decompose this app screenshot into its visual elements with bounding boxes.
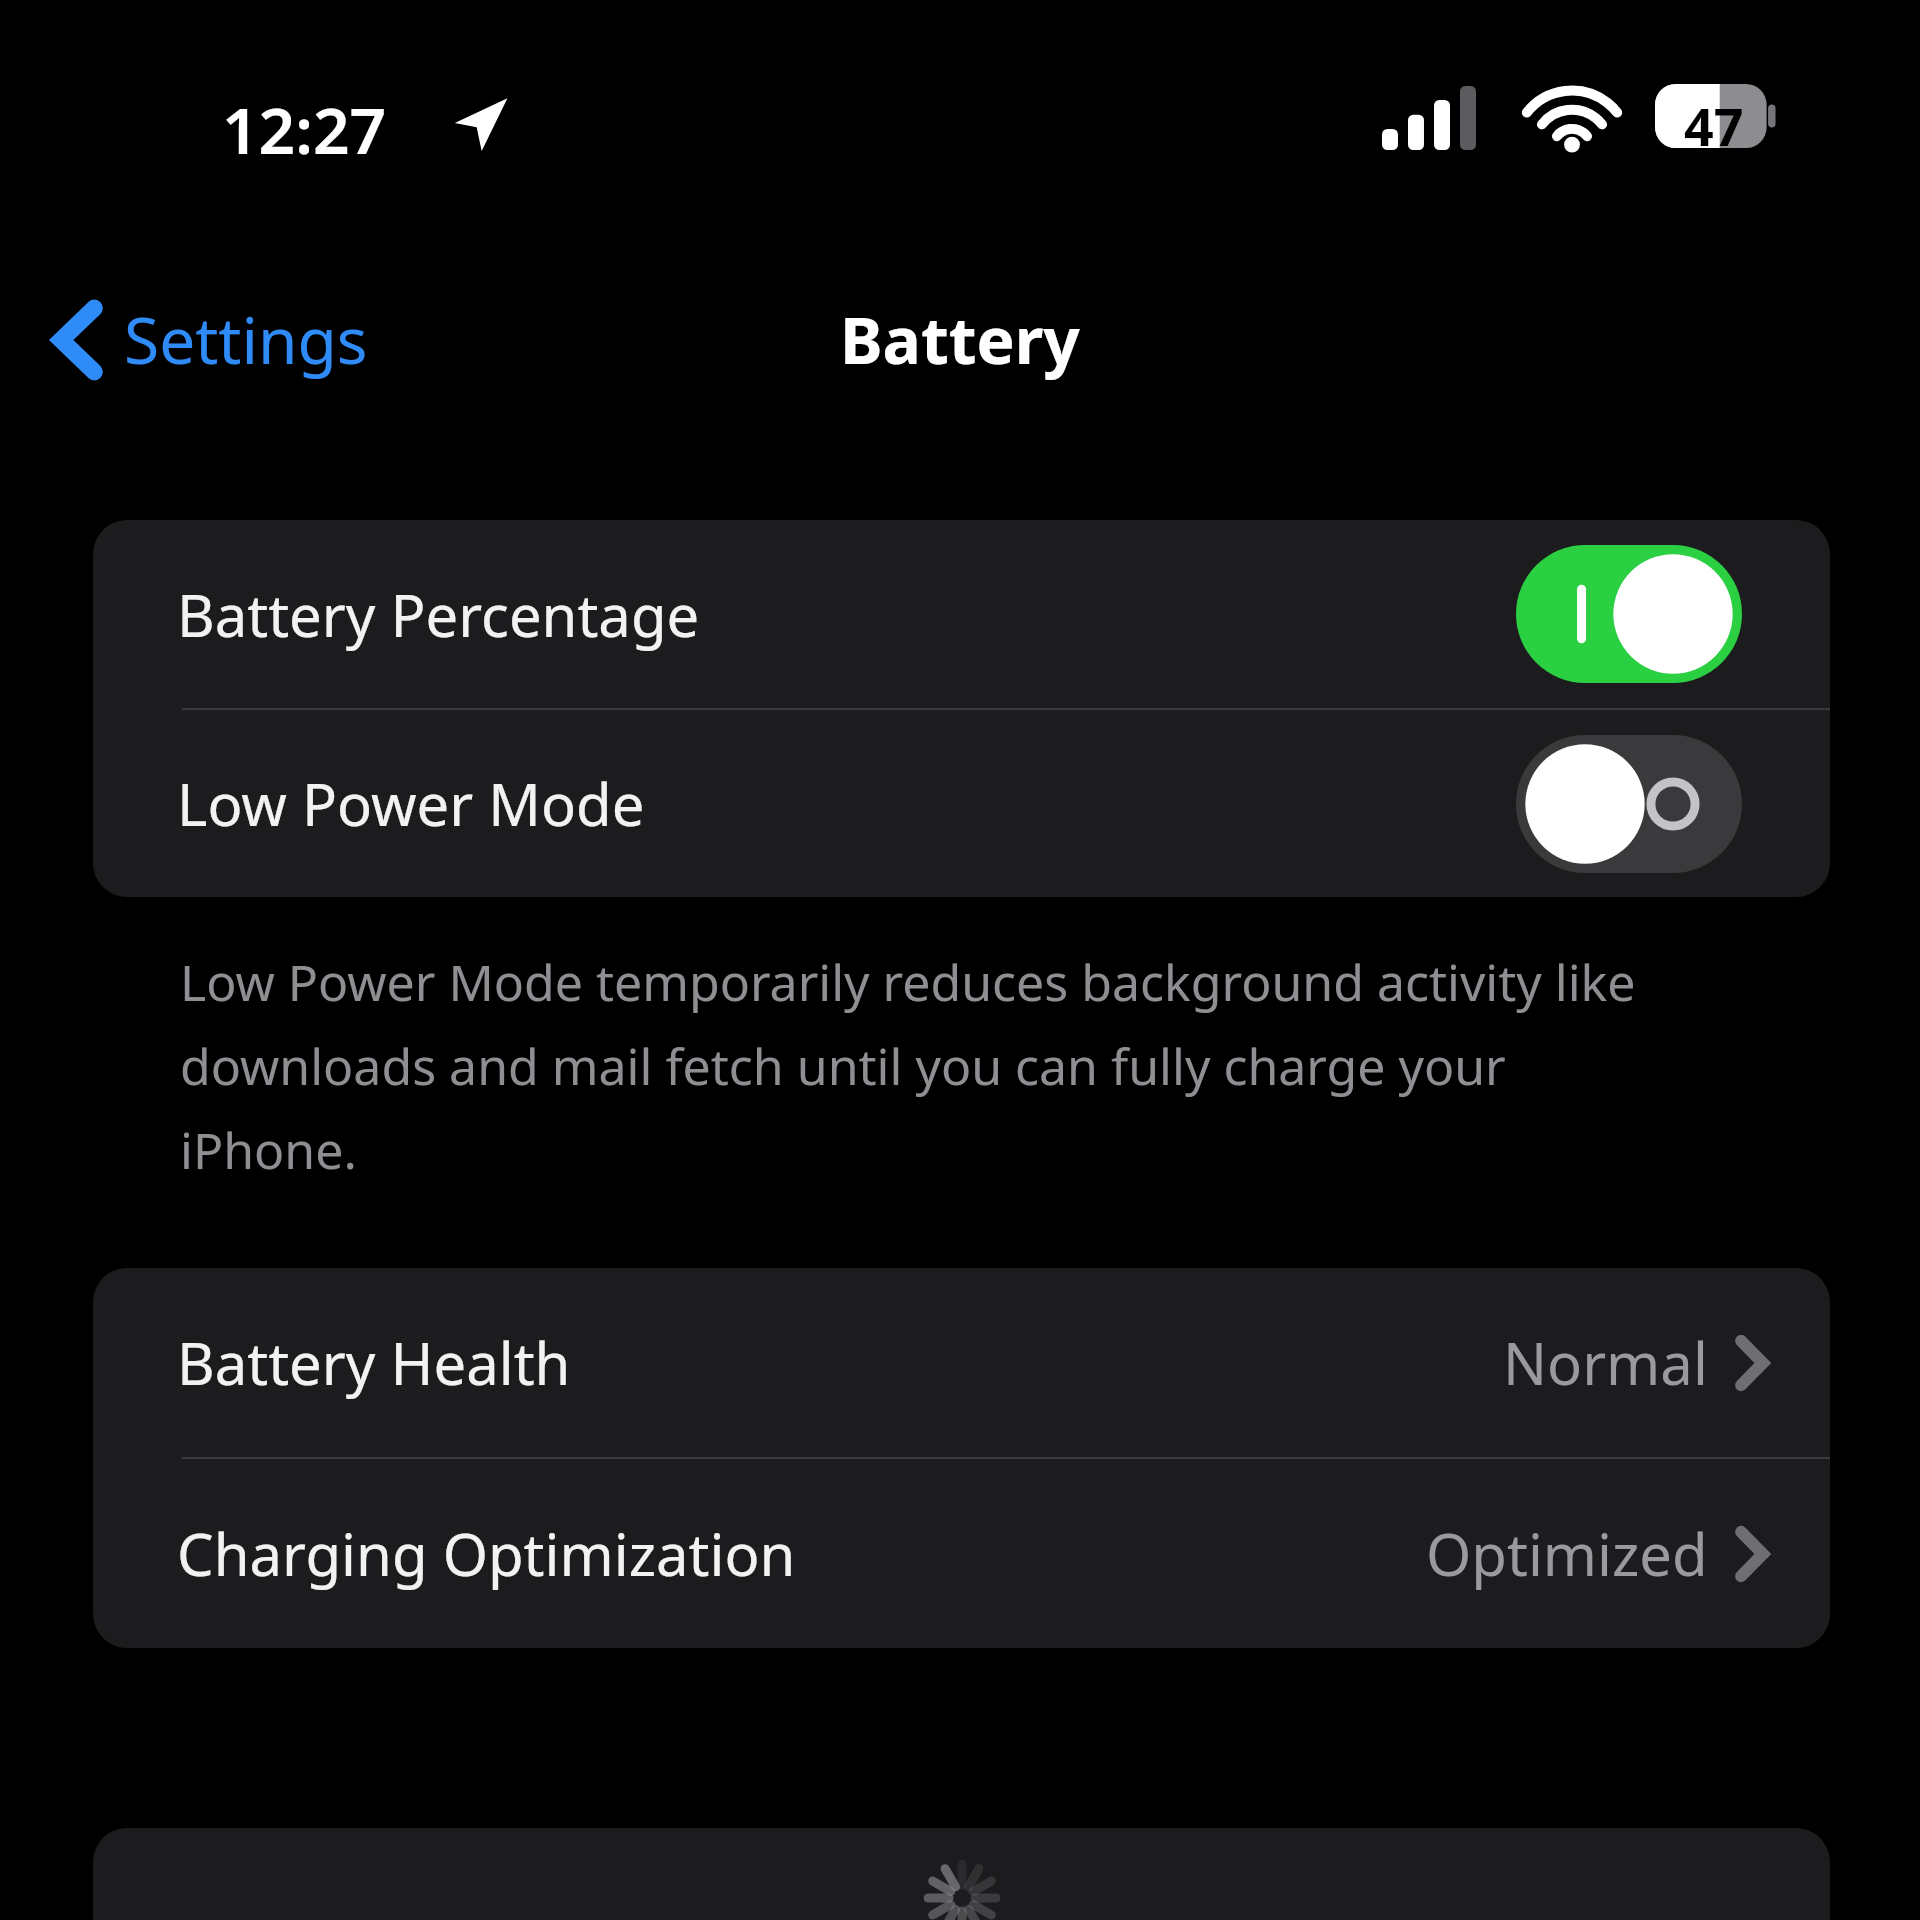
staticText: Battery Percentage <box>177 575 1516 654</box>
button[interactable]: Settings <box>44 288 378 391</box>
staticText: 12:27 <box>222 86 387 173</box>
staticText: iPhone. <box>180 1116 357 1184</box>
staticText: Charging Optimization <box>177 1514 1426 1593</box>
staticText: Low Power Mode temporarily reduces backg… <box>180 948 1636 1016</box>
other: Off <box>1516 735 1742 873</box>
other: On <box>1516 545 1742 683</box>
staticText: Normal <box>1503 1323 1708 1402</box>
staticText: 47 <box>1684 90 1744 161</box>
button[interactable]: Charging Optimization <box>93 1459 1830 1648</box>
staticText: Battery <box>840 296 1080 383</box>
button[interactable]: Low Power Mode <box>93 710 1830 897</box>
staticText: Battery Health <box>177 1323 1503 1402</box>
staticText: Optimized <box>1426 1514 1708 1593</box>
staticText: Low Power Mode <box>177 764 1516 843</box>
staticText: downloads and mail fetch until you can f… <box>180 1032 1506 1100</box>
button[interactable]: Battery Health <box>93 1268 1830 1457</box>
other: Loading <box>926 1862 998 1920</box>
button[interactable]: Battery Percentage <box>93 520 1830 708</box>
staticText: Settings <box>124 296 368 383</box>
